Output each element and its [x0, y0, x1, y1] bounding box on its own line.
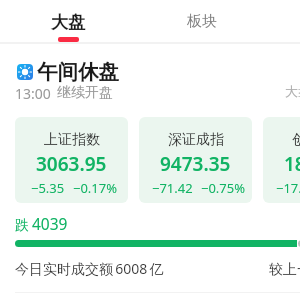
button[interactable]: 板块: [157, 0, 247, 43]
button[interactable]: 跌: [15, 213, 68, 234]
button[interactable]: 深证成指: [139, 117, 252, 203]
staticText: 深证成指: [168, 131, 224, 149]
staticText: 13:00: [15, 84, 51, 103]
staticText: 跌: [15, 217, 29, 234]
staticText: 较上一: [269, 261, 300, 279]
staticText: −71.42: [152, 179, 193, 197]
staticText: 上证指数: [44, 131, 100, 149]
staticText: −17.31: [276, 179, 300, 197]
button[interactable]: 上证指数: [15, 117, 128, 203]
staticText: 午间休盘: [37, 59, 119, 85]
button[interactable]: 创业板指: [263, 117, 300, 203]
staticText: 4039: [32, 213, 68, 234]
staticText: −5.35: [31, 179, 65, 197]
other: Market session status: [17, 64, 33, 80]
staticText: 大盘: [285, 83, 300, 99]
staticText: 3063.95: [36, 151, 107, 177]
staticText: 9473.35: [160, 151, 231, 177]
staticText: 板块: [187, 12, 217, 31]
staticText: 1820.55: [284, 151, 300, 177]
staticText: 创业板指: [292, 131, 300, 149]
staticText: −0.17%: [73, 179, 118, 197]
staticText: −0.75%: [201, 179, 246, 197]
staticText: 大盘: [51, 12, 85, 33]
staticText: 今日实时成交额 6008 亿: [15, 259, 164, 278]
button[interactable]: 大盘: [18, 0, 118, 43]
staticText: 继续开盘: [57, 84, 113, 102]
